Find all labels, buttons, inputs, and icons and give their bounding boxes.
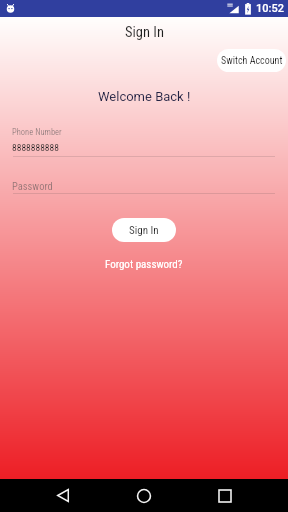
staticText: Sign In [129,224,159,237]
staticText: 8888888888 [12,142,59,153]
staticText: Switch Account [221,55,283,67]
button[interactable]: Home [126,479,162,512]
staticText: Sign In [125,24,164,41]
button[interactable]: Back [45,479,81,512]
staticText: 10:52 [256,2,284,15]
staticText: Phone Number [12,127,62,137]
button[interactable]: Recent apps [207,479,243,512]
staticText: Welcome Back ! [98,89,191,104]
button[interactable]: Sign In [112,218,176,242]
button[interactable]: Switch Account [217,49,286,72]
button[interactable]: Forgot password? [105,258,183,271]
staticText: Forgot password? [105,258,183,271]
staticText: Password [12,180,53,192]
